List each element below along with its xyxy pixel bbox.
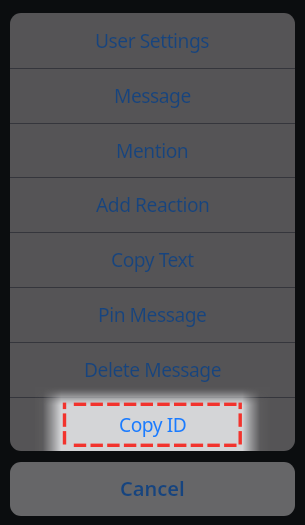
staticText: Cancel xyxy=(120,475,185,502)
staticText: Mention xyxy=(116,137,189,163)
button[interactable]: Copy Text xyxy=(10,232,295,287)
button[interactable]: User Settings xyxy=(10,13,295,68)
staticText: Pin Message xyxy=(98,301,207,327)
button[interactable]: Pin Message xyxy=(10,287,295,342)
button[interactable]: Mention xyxy=(10,123,295,178)
staticText: Delete Message xyxy=(84,356,222,382)
staticText: Copy ID xyxy=(119,411,187,437)
button[interactable]: Message xyxy=(10,68,295,123)
button[interactable]: Cancel xyxy=(10,462,295,516)
button[interactable]: Delete Message xyxy=(10,342,295,397)
staticText: User Settings xyxy=(95,27,210,53)
staticText: Copy Text xyxy=(111,246,194,272)
staticText: Add Reaction xyxy=(96,191,210,217)
button[interactable]: Add Reaction xyxy=(10,177,295,232)
button[interactable]: Copy ID xyxy=(10,397,295,451)
staticText: Message xyxy=(114,82,191,108)
